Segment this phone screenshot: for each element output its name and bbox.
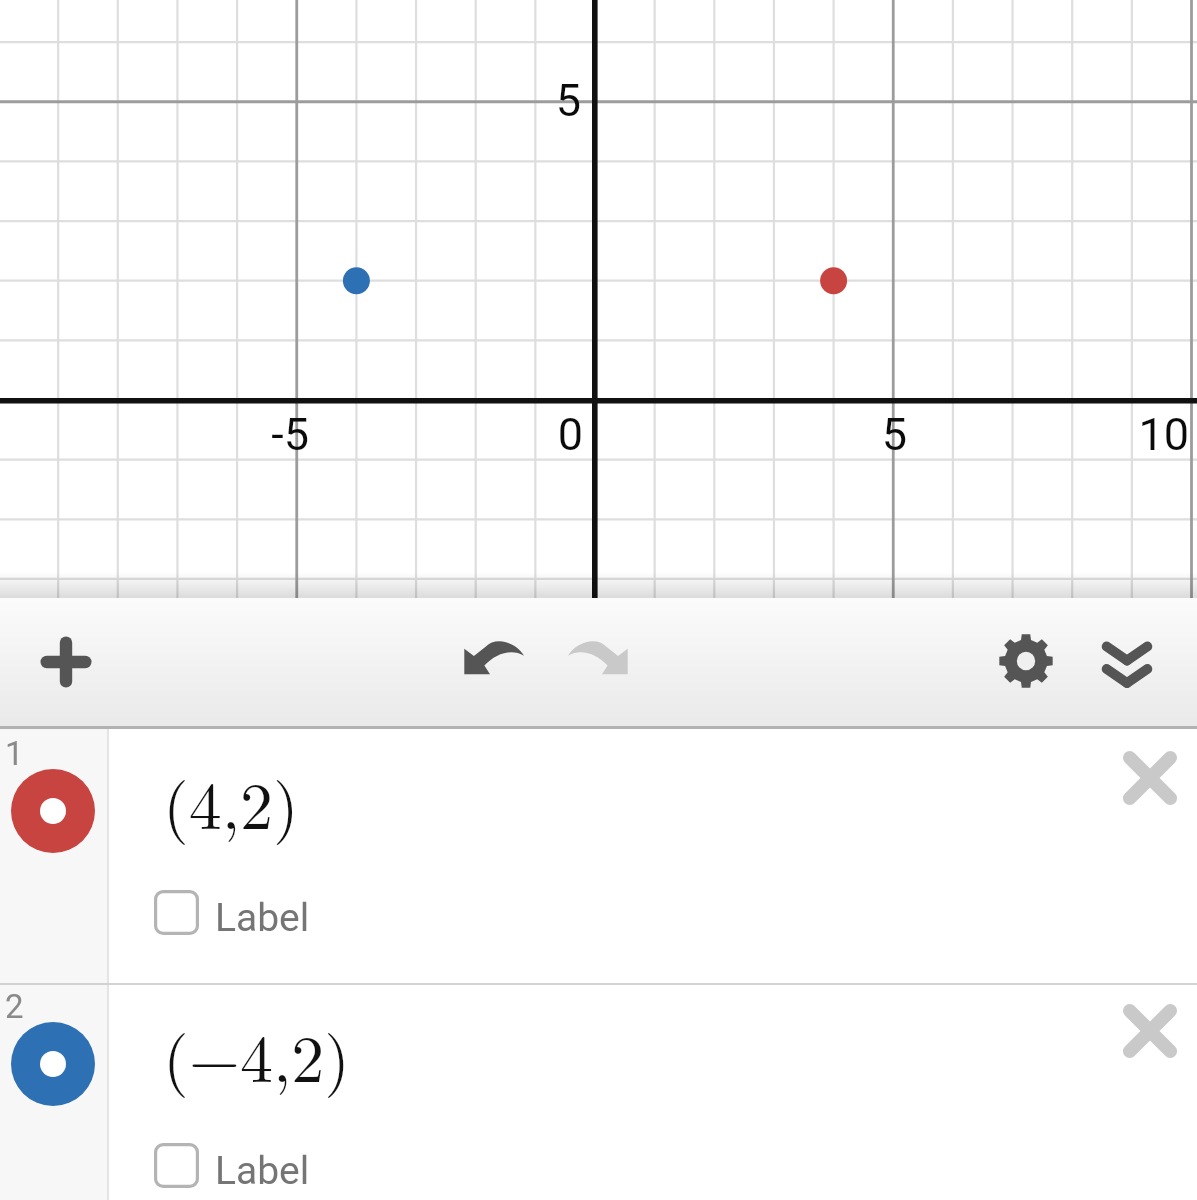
staticText: Label: [215, 895, 310, 941]
staticText: 1: [5, 734, 24, 773]
button[interactable]: Delete expression: [1110, 991, 1190, 1071]
staticText: 10: [1049, 408, 1189, 461]
button[interactable]: Redo: [558, 618, 638, 698]
button[interactable]: Label: [154, 889, 294, 935]
button[interactable]: 1: [0, 729, 1197, 985]
staticText: -5: [169, 408, 309, 461]
button[interactable]: (−4,2): [129, 990, 1109, 1118]
button[interactable]: Label: [154, 1142, 294, 1188]
staticText: Label: [215, 1148, 310, 1194]
button[interactable]: Delete expression: [1110, 738, 1190, 818]
button[interactable]: Point colour: [8, 1019, 98, 1109]
button[interactable]: Collapse list: [1087, 624, 1167, 704]
staticText: 2: [5, 987, 24, 1026]
button[interactable]: Settings: [986, 621, 1066, 701]
staticText: (−4,2): [163, 1008, 351, 1102]
staticText: 5: [441, 74, 581, 127]
button[interactable]: Add expression: [26, 622, 106, 702]
staticText: (4,2): [163, 755, 299, 849]
button[interactable]: Undo: [454, 618, 534, 698]
button[interactable]: (4,2): [129, 737, 1109, 865]
button[interactable]: Point colour: [8, 766, 98, 856]
button[interactable]: 2: [0, 985, 1197, 1200]
staticText: 5: [767, 408, 907, 461]
staticText: 0: [443, 408, 583, 461]
